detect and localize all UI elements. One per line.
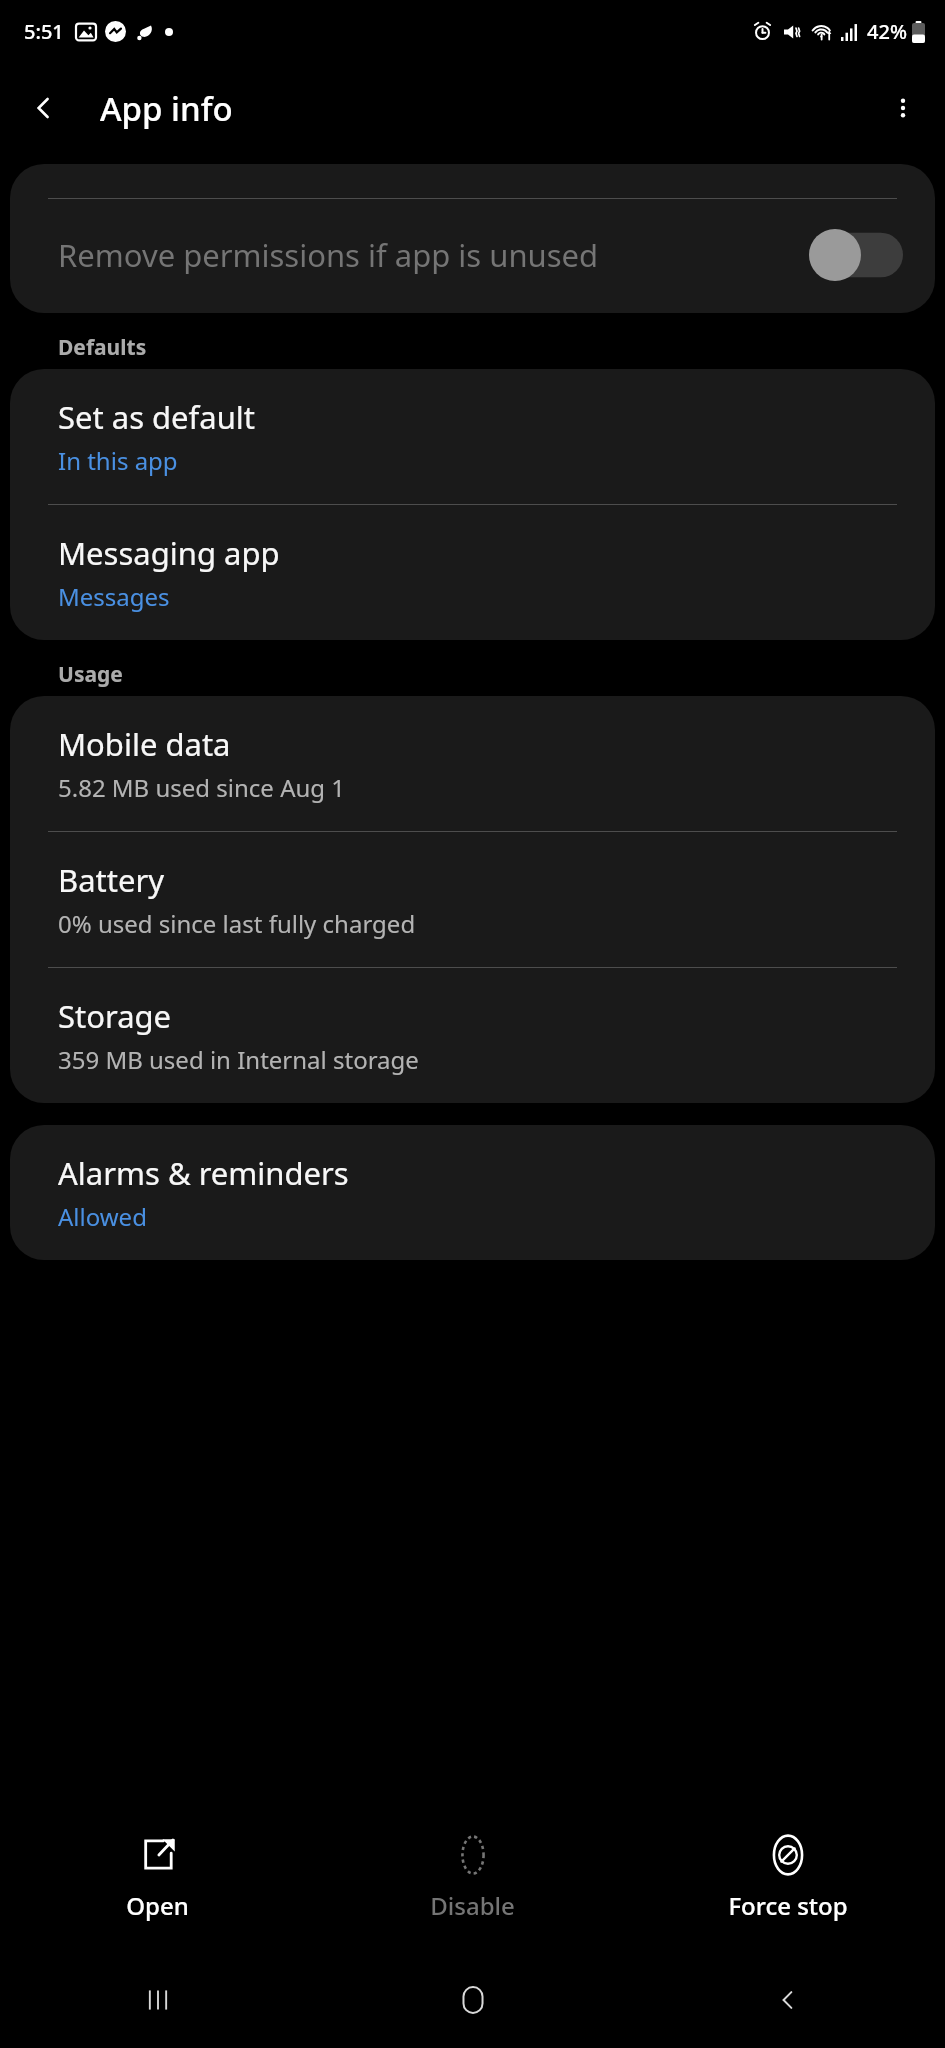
staticText: 42% <box>867 18 907 45</box>
button[interactable]: Storage <box>10 968 935 1103</box>
staticText: Defaults <box>58 333 147 362</box>
staticText: Messages <box>58 580 170 613</box>
staticText: Set as default <box>58 396 256 438</box>
staticText: App info <box>100 86 233 131</box>
button[interactable]: More options <box>875 80 931 136</box>
button[interactable]: Set as default <box>10 369 935 504</box>
button[interactable]: Disable <box>315 1802 630 1952</box>
staticText: Alarms & reminders <box>58 1152 349 1194</box>
staticText: Usage <box>58 660 123 689</box>
staticText: Mobile data <box>58 723 231 765</box>
staticText: In this app <box>58 444 178 477</box>
button[interactable]: Battery <box>10 832 935 967</box>
staticText: 5:51 <box>24 18 64 45</box>
staticText: 0% used since last fully charged <box>58 907 416 940</box>
button[interactable]: Alarms & reminders <box>10 1125 935 1260</box>
button[interactable]: Open <box>0 1802 315 1952</box>
button[interactable]: Home <box>315 1952 630 2048</box>
button[interactable]: Back <box>16 80 72 136</box>
staticText: 5.82 MB used since Aug 1 <box>58 771 346 804</box>
button[interactable]: Back <box>630 1952 945 2048</box>
staticText: Storage <box>58 995 172 1037</box>
button[interactable]: Recents <box>0 1952 315 2048</box>
staticText: Force stop <box>728 1889 848 1922</box>
button[interactable]: Remove permissions if app is unused <box>10 199 935 313</box>
staticText: 359 MB used in Internal storage <box>58 1043 419 1076</box>
button[interactable]: Mobile data <box>10 696 935 831</box>
staticText: Battery <box>58 859 165 901</box>
staticText: Messaging app <box>58 532 280 574</box>
button[interactable]: Force stop <box>630 1802 945 1952</box>
staticText: Remove permissions if app is unused <box>58 234 785 276</box>
button[interactable]: Messaging app <box>10 505 935 640</box>
staticText: Open <box>126 1889 189 1922</box>
staticText: Allowed <box>58 1200 147 1233</box>
staticText: Disable <box>430 1889 515 1922</box>
